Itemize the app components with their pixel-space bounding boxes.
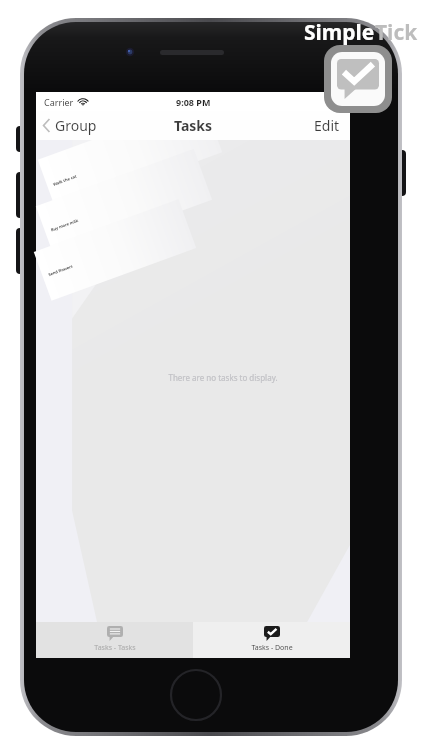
staticText: There are no tasks to display. xyxy=(168,372,278,383)
staticText: Walk the cat xyxy=(52,174,77,187)
staticText: Group xyxy=(55,116,97,135)
button[interactable]: Edit xyxy=(304,111,350,140)
staticText: Simple xyxy=(304,18,375,47)
staticText: Carrier xyxy=(44,96,74,108)
staticText: Tasks xyxy=(174,116,213,135)
button[interactable]: Group xyxy=(36,111,107,140)
button[interactable]: Tasks - Tasks xyxy=(36,622,193,658)
button[interactable]: Tasks - Done xyxy=(193,622,350,658)
staticText: Tasks - Done xyxy=(251,643,293,653)
staticText: Buy more milk xyxy=(50,218,79,232)
staticText: Edit xyxy=(314,116,340,135)
staticText: Tasks - Tasks xyxy=(94,643,136,653)
staticText: 9:08 PM xyxy=(176,96,211,108)
staticText: Send flowers xyxy=(48,263,74,277)
staticText: Tick xyxy=(375,18,418,47)
